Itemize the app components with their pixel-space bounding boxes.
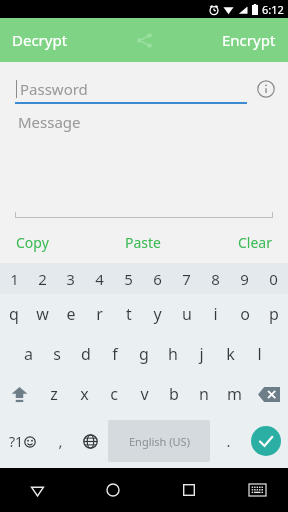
button[interactable]: , <box>45 414 75 468</box>
button[interactable]: h <box>158 334 187 374</box>
staticText: . <box>226 431 231 451</box>
button[interactable]: Shift <box>0 374 39 414</box>
button[interactable]: i <box>201 294 230 334</box>
button[interactable]: 8 <box>201 263 230 294</box>
staticText: 8 <box>211 269 220 289</box>
button[interactable]: Info <box>252 75 280 103</box>
staticText: a <box>24 343 33 365</box>
button[interactable]: . <box>213 414 243 468</box>
staticText: o <box>240 303 250 325</box>
button[interactable]: Home <box>75 468 151 512</box>
button[interactable]: p <box>259 294 288 334</box>
staticText: c <box>110 383 118 405</box>
button[interactable]: Change language <box>75 414 105 468</box>
button[interactable]: u <box>172 294 201 334</box>
button[interactable]: f <box>100 334 129 374</box>
button[interactable]: 5 <box>114 263 143 294</box>
button[interactable]: Password <box>16 74 246 104</box>
button[interactable]: Hide keyboard <box>227 468 288 512</box>
staticText: j <box>199 343 204 365</box>
staticText: , <box>58 431 63 451</box>
button[interactable]: English (US) <box>108 420 210 462</box>
button[interactable]: Decrypt <box>0 18 80 62</box>
staticText: Clear <box>238 233 272 252</box>
staticText: m <box>227 383 242 405</box>
button[interactable]: Copy <box>14 233 51 252</box>
staticText: 3 <box>66 269 75 289</box>
button[interactable]: q <box>0 294 28 334</box>
button[interactable]: 3 <box>56 263 85 294</box>
button[interactable]: n <box>189 374 219 414</box>
button[interactable]: 7 <box>172 263 201 294</box>
button[interactable]: j <box>187 334 216 374</box>
button[interactable]: 0 <box>259 263 288 294</box>
button[interactable]: v <box>129 374 159 414</box>
staticText: w <box>36 303 49 325</box>
staticText: e <box>66 303 76 325</box>
button[interactable]: o <box>230 294 259 334</box>
button[interactable]: m <box>219 374 249 414</box>
button[interactable]: y <box>143 294 172 334</box>
staticText: t <box>126 303 132 325</box>
staticText: p <box>269 303 279 325</box>
staticText: 9 <box>240 269 249 289</box>
button[interactable]: w <box>28 294 56 334</box>
staticText: 2 <box>38 269 47 289</box>
button[interactable]: 6 <box>143 263 172 294</box>
staticText: i <box>213 303 218 325</box>
staticText: d <box>81 343 91 365</box>
staticText: u <box>182 303 192 325</box>
staticText: q <box>9 303 19 325</box>
staticText: 5 <box>124 269 133 289</box>
staticText: Paste <box>125 233 161 252</box>
button[interactable]: Share <box>122 18 166 62</box>
button[interactable]: Clear <box>236 233 274 252</box>
button[interactable]: g <box>129 334 158 374</box>
staticText: g <box>139 343 149 365</box>
button[interactable]: 4 <box>85 263 114 294</box>
button[interactable]: d <box>71 334 100 374</box>
staticText: n <box>199 383 209 405</box>
staticText: l <box>257 343 262 365</box>
button[interactable]: Backspace <box>249 374 288 414</box>
staticText: 7 <box>182 269 191 289</box>
staticText: 6 <box>153 269 162 289</box>
button[interactable]: Paste <box>123 233 163 252</box>
button[interactable]: Enter <box>243 414 288 468</box>
staticText: b <box>169 383 179 405</box>
staticText: s <box>53 343 61 365</box>
button[interactable]: 9 <box>230 263 259 294</box>
staticText: Message <box>18 112 81 132</box>
staticText: 6:12 <box>262 2 284 17</box>
button[interactable]: z <box>39 374 69 414</box>
button[interactable]: 2 <box>28 263 56 294</box>
button[interactable]: Encrypt <box>210 18 288 62</box>
staticText: English (US) <box>129 434 190 449</box>
button[interactable]: a <box>14 334 42 374</box>
staticText: h <box>168 343 178 365</box>
staticText: 1 <box>10 269 19 289</box>
staticText: z <box>50 383 58 405</box>
button[interactable]: r <box>85 294 114 334</box>
button[interactable]: s <box>42 334 71 374</box>
button[interactable]: c <box>99 374 129 414</box>
staticText: Copy <box>16 233 49 252</box>
staticText: 0 <box>269 269 278 289</box>
staticText: Decrypt <box>12 30 68 50</box>
button[interactable]: b <box>159 374 189 414</box>
staticText: r <box>96 303 103 325</box>
staticText: x <box>80 383 89 405</box>
staticText: k <box>226 343 235 365</box>
button[interactable]: ?1 <box>0 414 45 468</box>
button[interactable]: Message <box>18 112 288 207</box>
button[interactable]: e <box>56 294 85 334</box>
staticText: Encrypt <box>222 30 276 50</box>
button[interactable]: l <box>245 334 274 374</box>
button[interactable]: k <box>216 334 245 374</box>
button[interactable]: Recent apps <box>151 468 227 512</box>
staticText: v <box>140 383 149 405</box>
button[interactable]: Back <box>0 468 75 512</box>
button[interactable]: 1 <box>0 263 28 294</box>
button[interactable]: x <box>69 374 99 414</box>
button[interactable]: t <box>114 294 143 334</box>
